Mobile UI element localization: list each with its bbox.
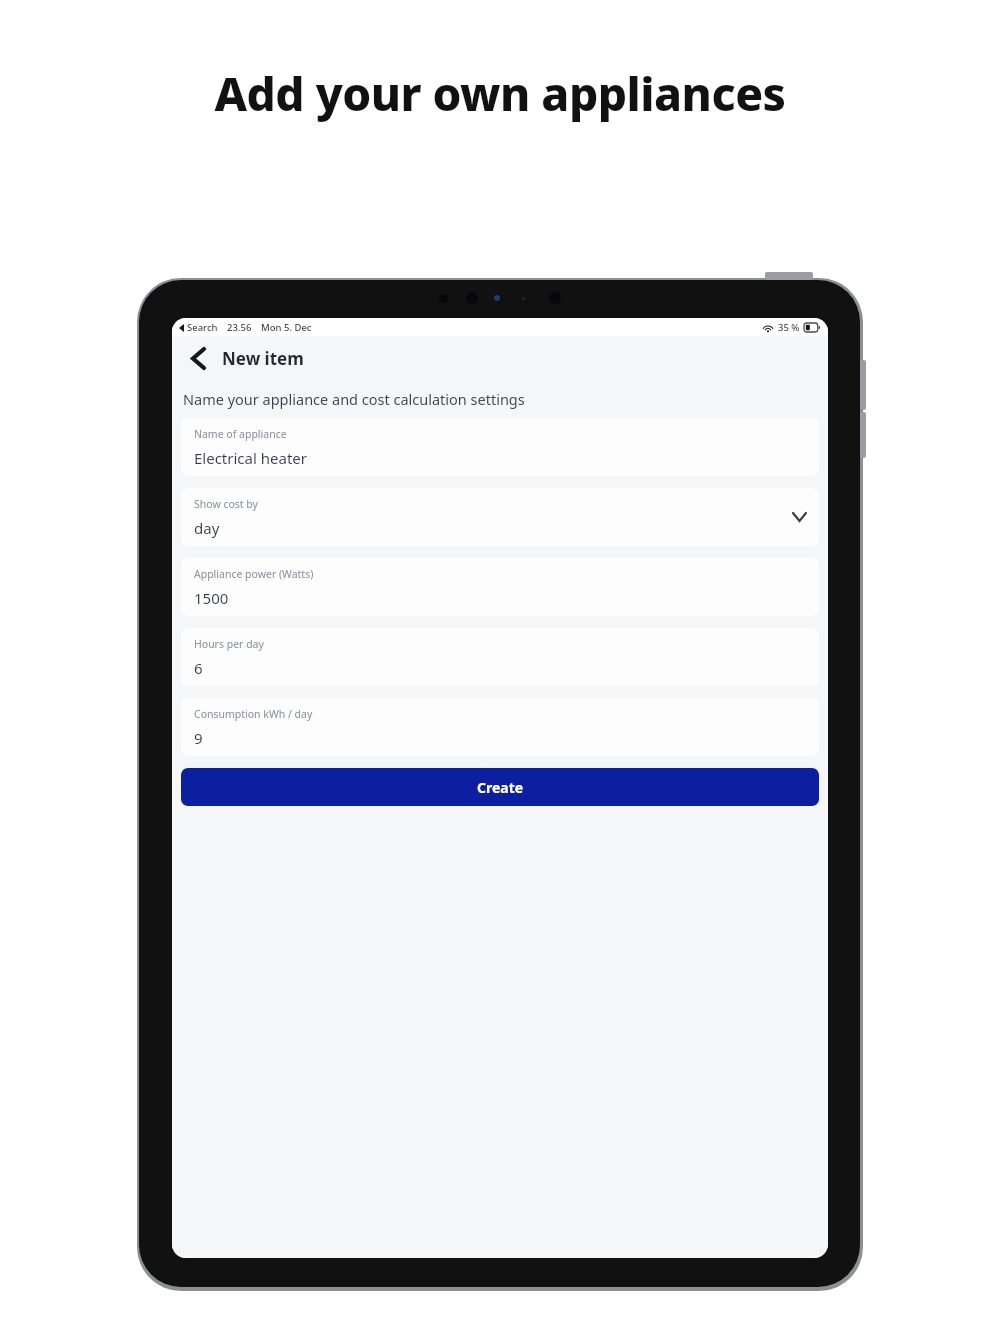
button[interactable]: Show cost by [181, 488, 819, 546]
staticText: New item [222, 347, 304, 370]
staticText: Add your own appliances [0, 62, 1000, 125]
staticText: 6 [194, 658, 203, 678]
staticText: 23.56 [227, 321, 252, 334]
staticText: Show cost by [194, 497, 258, 511]
staticText: Search [187, 321, 218, 334]
other: Volume up [860, 360, 866, 410]
staticText: 9 [194, 728, 203, 748]
staticText: 35 % [778, 321, 800, 334]
button[interactable]: Consumption kWh / day [181, 698, 819, 756]
button[interactable]: Name of appliance [181, 418, 819, 476]
staticText: 1500 [194, 588, 229, 608]
staticText: Name of appliance [194, 427, 287, 441]
staticText: Mon 5. Dec [261, 321, 312, 334]
button[interactable]: Appliance power (Watts) [181, 558, 819, 616]
button[interactable]: Hours per day [181, 628, 819, 686]
staticText: Appliance power (Watts) [194, 567, 314, 581]
staticText: Create [477, 778, 524, 797]
staticText: Consumption kWh / day [194, 707, 313, 721]
staticText: Electrical heater [194, 448, 307, 468]
button[interactable]: Back [182, 342, 214, 374]
button[interactable]: Create [181, 768, 819, 806]
other: Volume down [860, 412, 866, 458]
staticText: Name your appliance and cost calculation… [183, 389, 525, 409]
staticText: day [194, 518, 220, 538]
staticText: Hours per day [194, 637, 264, 651]
other: Power [765, 272, 813, 280]
